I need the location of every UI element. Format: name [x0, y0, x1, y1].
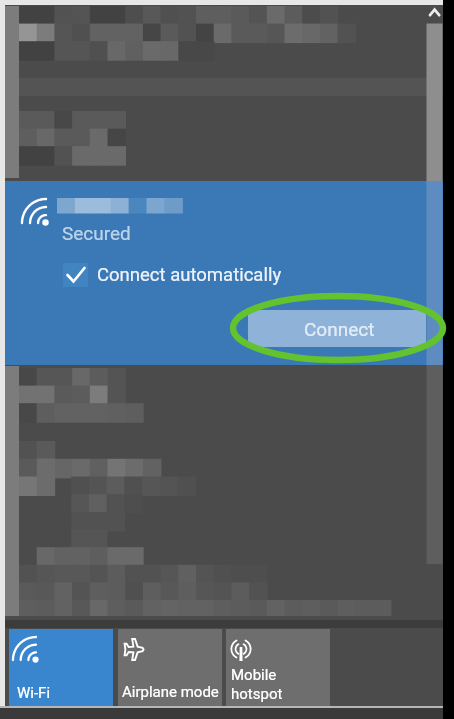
staticText: Connect	[304, 318, 375, 340]
staticText: Connect automatically	[97, 264, 282, 286]
staticText: Wi-Fi	[17, 684, 51, 702]
staticText: Airplane mode	[122, 683, 219, 701]
staticText: Mobile hotspot	[231, 666, 283, 703]
staticText: Secured	[62, 222, 131, 244]
